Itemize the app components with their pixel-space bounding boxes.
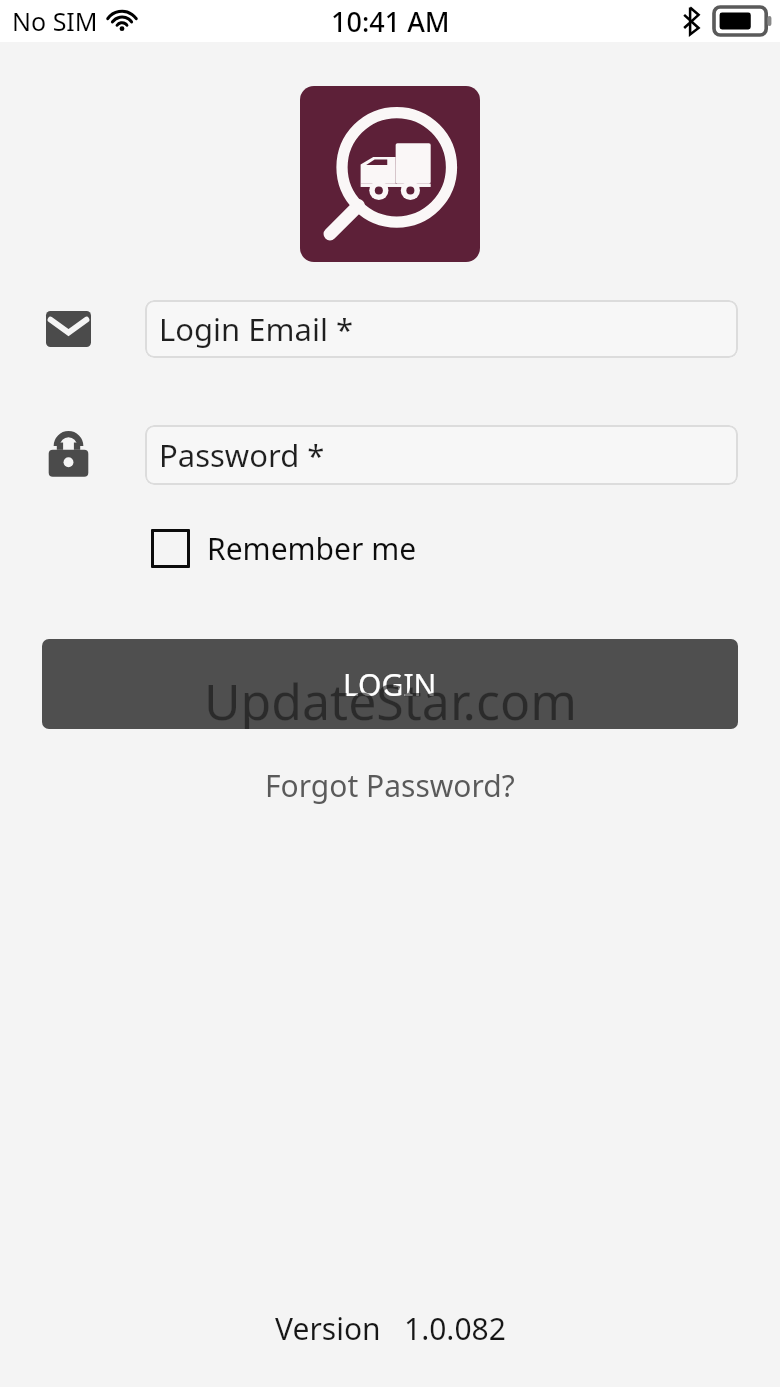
staticText: Remember me <box>207 528 417 569</box>
staticText: Login Email * <box>159 308 354 350</box>
button[interactable]: Forgot Password? <box>257 757 523 814</box>
staticText: 10:41 AM <box>331 3 450 40</box>
button[interactable]: Login Email * <box>145 300 738 358</box>
button[interactable]: Remember me <box>151 528 417 569</box>
staticText: LOGIN <box>343 664 437 705</box>
other: App logo <box>300 86 480 262</box>
staticText: UpdateStar.com <box>204 667 577 729</box>
staticText: No SIM <box>12 4 98 38</box>
button[interactable]: LOGIN <box>42 639 738 729</box>
other: Email <box>46 311 91 347</box>
button[interactable]: Password * <box>145 425 738 485</box>
other: Password <box>46 429 91 481</box>
staticText: Version 1.0.082 <box>275 1308 506 1349</box>
staticText: Password * <box>159 434 325 476</box>
staticText: Forgot Password? <box>265 765 515 806</box>
